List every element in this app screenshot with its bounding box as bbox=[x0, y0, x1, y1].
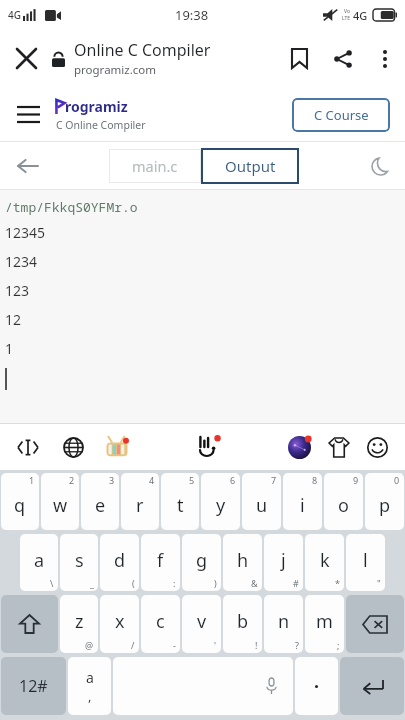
staticText: / bbox=[131, 639, 135, 651]
staticText: 4G bbox=[353, 8, 368, 23]
staticText: 0 bbox=[394, 474, 400, 486]
staticText: LTE bbox=[342, 15, 351, 22]
button[interactable]: d bbox=[100, 534, 139, 591]
staticText: p bbox=[379, 493, 391, 518]
button[interactable]: 3 bbox=[81, 473, 119, 530]
button[interactable]: m bbox=[305, 595, 344, 653]
button[interactable]: Close bbox=[0, 30, 52, 87]
staticText: 12# bbox=[19, 675, 48, 697]
staticText: : bbox=[173, 577, 176, 589]
button[interactable]: f bbox=[141, 534, 180, 591]
button[interactable]: c bbox=[141, 595, 180, 653]
button[interactable]: Skins bbox=[321, 424, 357, 470]
button[interactable]: main.c bbox=[109, 149, 201, 183]
staticText: , bbox=[88, 687, 92, 705]
button[interactable]: h bbox=[223, 534, 262, 591]
staticText: t bbox=[177, 493, 184, 518]
staticText: q bbox=[14, 493, 26, 518]
button[interactable]: j bbox=[264, 534, 303, 591]
staticText: 12 bbox=[5, 310, 22, 329]
staticText: d bbox=[114, 548, 126, 573]
staticText: 2 bbox=[69, 474, 75, 486]
staticText: u bbox=[256, 493, 268, 518]
staticText: s bbox=[75, 548, 84, 573]
staticText: a bbox=[86, 668, 94, 687]
button[interactable]: 0 bbox=[365, 473, 404, 530]
button[interactable]: x bbox=[100, 595, 139, 653]
staticText: ? bbox=[295, 639, 299, 651]
staticText: 8 bbox=[312, 474, 318, 486]
button[interactable]: 12# bbox=[1, 657, 66, 715]
staticText: n bbox=[278, 609, 290, 634]
staticText: ) bbox=[214, 577, 217, 589]
button[interactable]: Backspace bbox=[346, 595, 404, 653]
staticText: 12345 bbox=[5, 223, 46, 242]
staticText: 19:38 bbox=[175, 6, 209, 24]
button[interactable]: Dark mode bbox=[355, 142, 405, 190]
staticText: 1 bbox=[29, 474, 35, 486]
button[interactable]: a bbox=[20, 534, 58, 591]
button[interactable]: 2 bbox=[41, 473, 79, 530]
button[interactable]: s bbox=[60, 534, 98, 591]
button[interactable]: Move cursor bbox=[10, 424, 46, 470]
button[interactable]: Share bbox=[321, 30, 365, 87]
button[interactable]: Space bbox=[113, 657, 293, 715]
staticText: Online C Compiler bbox=[74, 39, 211, 61]
button[interactable]: Bookmark bbox=[277, 30, 321, 87]
button[interactable]: k bbox=[305, 534, 344, 591]
button[interactable]: Back bbox=[0, 142, 56, 190]
staticText: - bbox=[173, 639, 176, 651]
button[interactable]: Output bbox=[201, 148, 299, 184]
button[interactable]: g bbox=[182, 534, 221, 591]
button[interactable]: l bbox=[346, 534, 385, 591]
button[interactable]: 1 bbox=[1, 473, 39, 530]
staticText: 3 bbox=[109, 474, 115, 486]
staticText: rogramiz bbox=[65, 97, 128, 116]
staticText: g bbox=[196, 548, 208, 573]
button[interactable]: Enter bbox=[340, 657, 404, 715]
staticText: 7 bbox=[271, 474, 277, 486]
staticText: ! bbox=[255, 639, 258, 651]
staticText: a bbox=[34, 548, 45, 573]
button[interactable] bbox=[295, 657, 338, 715]
staticText: k bbox=[320, 548, 330, 573]
staticText: # bbox=[293, 577, 299, 589]
staticText: 9 bbox=[353, 474, 359, 486]
staticText: /tmp/FkkqS0YFMr.o bbox=[5, 198, 138, 216]
button[interactable]: Themes bbox=[100, 424, 134, 470]
staticText: j bbox=[281, 548, 286, 573]
staticText: y bbox=[216, 493, 226, 518]
staticText: m bbox=[316, 609, 333, 634]
staticText: 6 bbox=[230, 474, 236, 486]
button[interactable]: v bbox=[182, 595, 221, 653]
staticText: w bbox=[53, 493, 68, 518]
button[interactable]: 7 bbox=[242, 473, 281, 530]
staticText: & bbox=[251, 577, 258, 589]
button[interactable]: 6 bbox=[201, 473, 240, 530]
staticText: 5 bbox=[189, 474, 195, 486]
button[interactable]: 9 bbox=[324, 473, 363, 530]
button[interactable]: Avatar bbox=[281, 424, 317, 470]
button[interactable]: C Course bbox=[292, 98, 390, 132]
button[interactable]: n bbox=[264, 595, 303, 653]
staticText: 1 bbox=[5, 339, 14, 358]
staticText: h bbox=[237, 548, 249, 573]
button[interactable]: Emoji bbox=[359, 424, 395, 470]
button[interactable]: Shift bbox=[1, 595, 58, 653]
button[interactable]: Menu bbox=[0, 87, 56, 142]
staticText: ' bbox=[214, 639, 217, 651]
button[interactable]: 4 bbox=[121, 473, 159, 530]
staticText: C Online Compiler bbox=[56, 118, 146, 132]
staticText: z bbox=[75, 609, 84, 634]
button[interactable]: z bbox=[60, 595, 98, 653]
button[interactable]: Language bbox=[56, 424, 90, 470]
button[interactable]: More options bbox=[365, 30, 405, 87]
button[interactable]: a bbox=[68, 657, 111, 715]
button[interactable]: 8 bbox=[283, 473, 322, 530]
staticText: c bbox=[156, 609, 165, 634]
staticText: Vo bbox=[344, 8, 350, 15]
button[interactable]: Stickers bbox=[187, 424, 227, 470]
staticText: 1234 bbox=[5, 252, 38, 271]
button[interactable]: b bbox=[223, 595, 262, 653]
button[interactable]: 5 bbox=[161, 473, 199, 530]
